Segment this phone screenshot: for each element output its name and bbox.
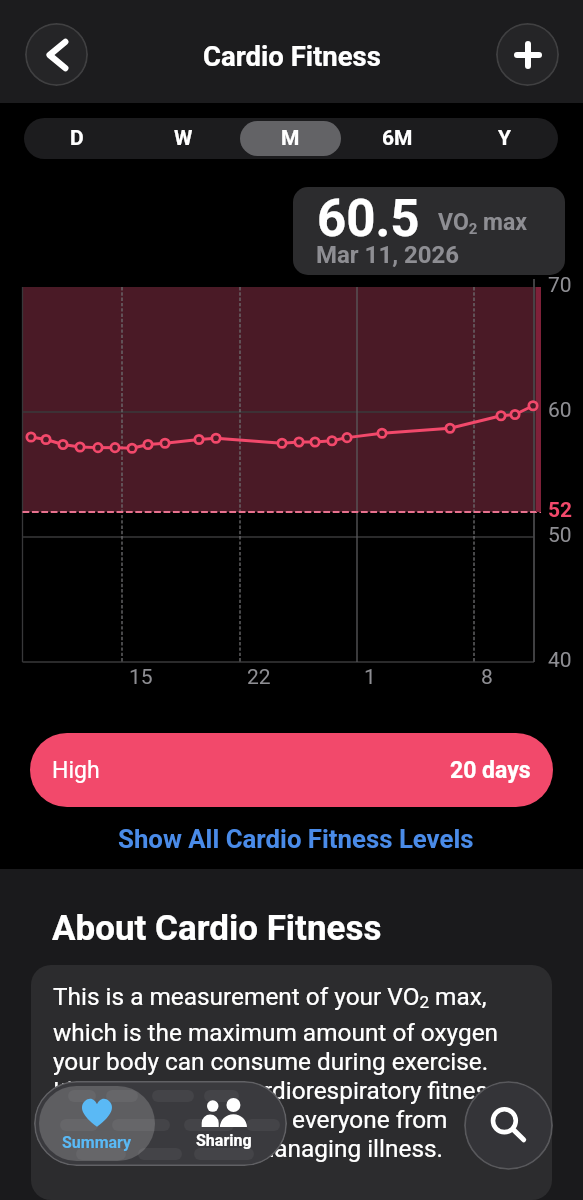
- staticText: 40: [548, 648, 572, 673]
- staticText: W: [174, 126, 193, 151]
- button[interactable]: Show All Cardio Fitness Levels: [108, 820, 484, 858]
- staticText: Summary: [62, 1133, 132, 1152]
- staticText: D: [70, 126, 84, 151]
- staticText: 15: [129, 665, 153, 690]
- staticText: 50: [548, 523, 572, 548]
- staticText: 1: [364, 665, 376, 690]
- staticText: Show All Cardio Fitness Levels: [118, 824, 474, 854]
- staticText: 52: [548, 498, 573, 523]
- staticText: 6M: [382, 126, 413, 151]
- staticText: 60.5: [317, 189, 420, 249]
- button[interactable]: Summary: [39, 1086, 155, 1161]
- staticText: 70: [548, 273, 572, 298]
- staticText: 60: [548, 398, 572, 423]
- staticText: Sharing: [196, 1131, 252, 1150]
- staticText: 8: [481, 665, 493, 690]
- staticText: Cardio Fitness: [203, 40, 381, 72]
- button[interactable]: High: [30, 733, 553, 807]
- button[interactable]: Sharing: [160, 1081, 287, 1166]
- staticText: VO2 max: [438, 209, 527, 238]
- staticText: 20 days: [450, 757, 531, 784]
- staticText: Mar 11, 2026: [316, 241, 460, 269]
- button[interactable]: Back: [25, 23, 88, 86]
- staticText: 22: [247, 665, 271, 690]
- button[interactable]: M: [240, 121, 341, 156]
- staticText: High: [52, 757, 100, 784]
- staticText: Y: [498, 126, 512, 151]
- button[interactable]: W: [133, 121, 234, 156]
- staticText: About Cardio Fitness: [52, 908, 382, 949]
- button[interactable]: 6M: [347, 121, 448, 156]
- staticText: This is a measurement of your VO2 max, w…: [53, 982, 508, 1163]
- staticText: M: [281, 126, 300, 151]
- button[interactable]: D: [27, 121, 127, 156]
- button[interactable]: Add: [496, 23, 559, 86]
- button[interactable]: Y: [454, 121, 555, 156]
- button[interactable]: Search: [464, 1081, 553, 1170]
